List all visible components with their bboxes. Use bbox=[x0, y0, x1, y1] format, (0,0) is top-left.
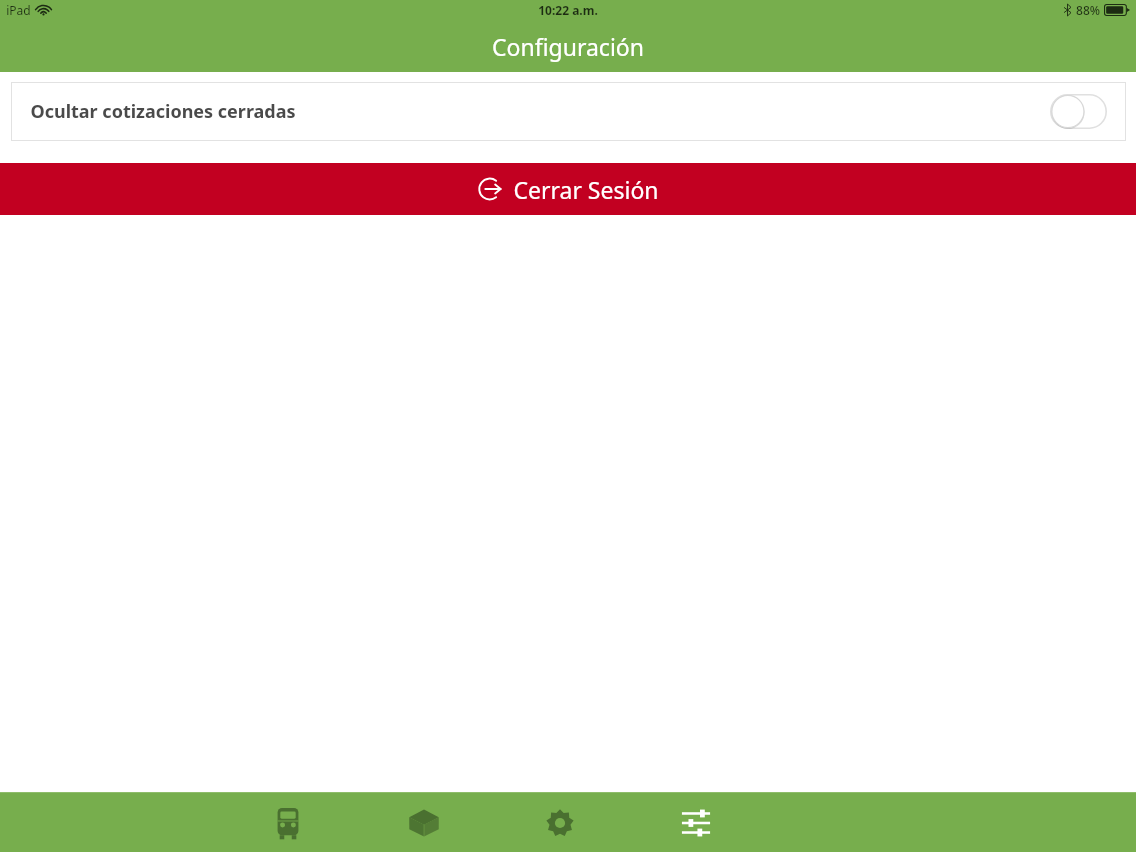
button[interactable]: Ocultar cotizaciones cerradas bbox=[1050, 94, 1107, 129]
staticText: iPad bbox=[6, 2, 31, 18]
button[interactable]: Paquetes bbox=[391, 793, 457, 852]
staticText: Cerrar Sesión bbox=[513, 174, 659, 205]
button[interactable]: Ajustes bbox=[527, 793, 593, 852]
button[interactable]: Viajes bbox=[255, 793, 321, 852]
staticText: Ocultar cotizaciones cerradas bbox=[30, 99, 296, 124]
button[interactable]: Ocultar cotizaciones cerradas bbox=[11, 82, 1126, 141]
staticText: 10:22 a.m. bbox=[538, 2, 598, 18]
button[interactable]: Cerrar Sesión bbox=[0, 163, 1136, 215]
button[interactable]: Configuración bbox=[663, 793, 729, 852]
staticText: 88% bbox=[1076, 2, 1100, 18]
staticText: Configuración bbox=[492, 31, 644, 62]
